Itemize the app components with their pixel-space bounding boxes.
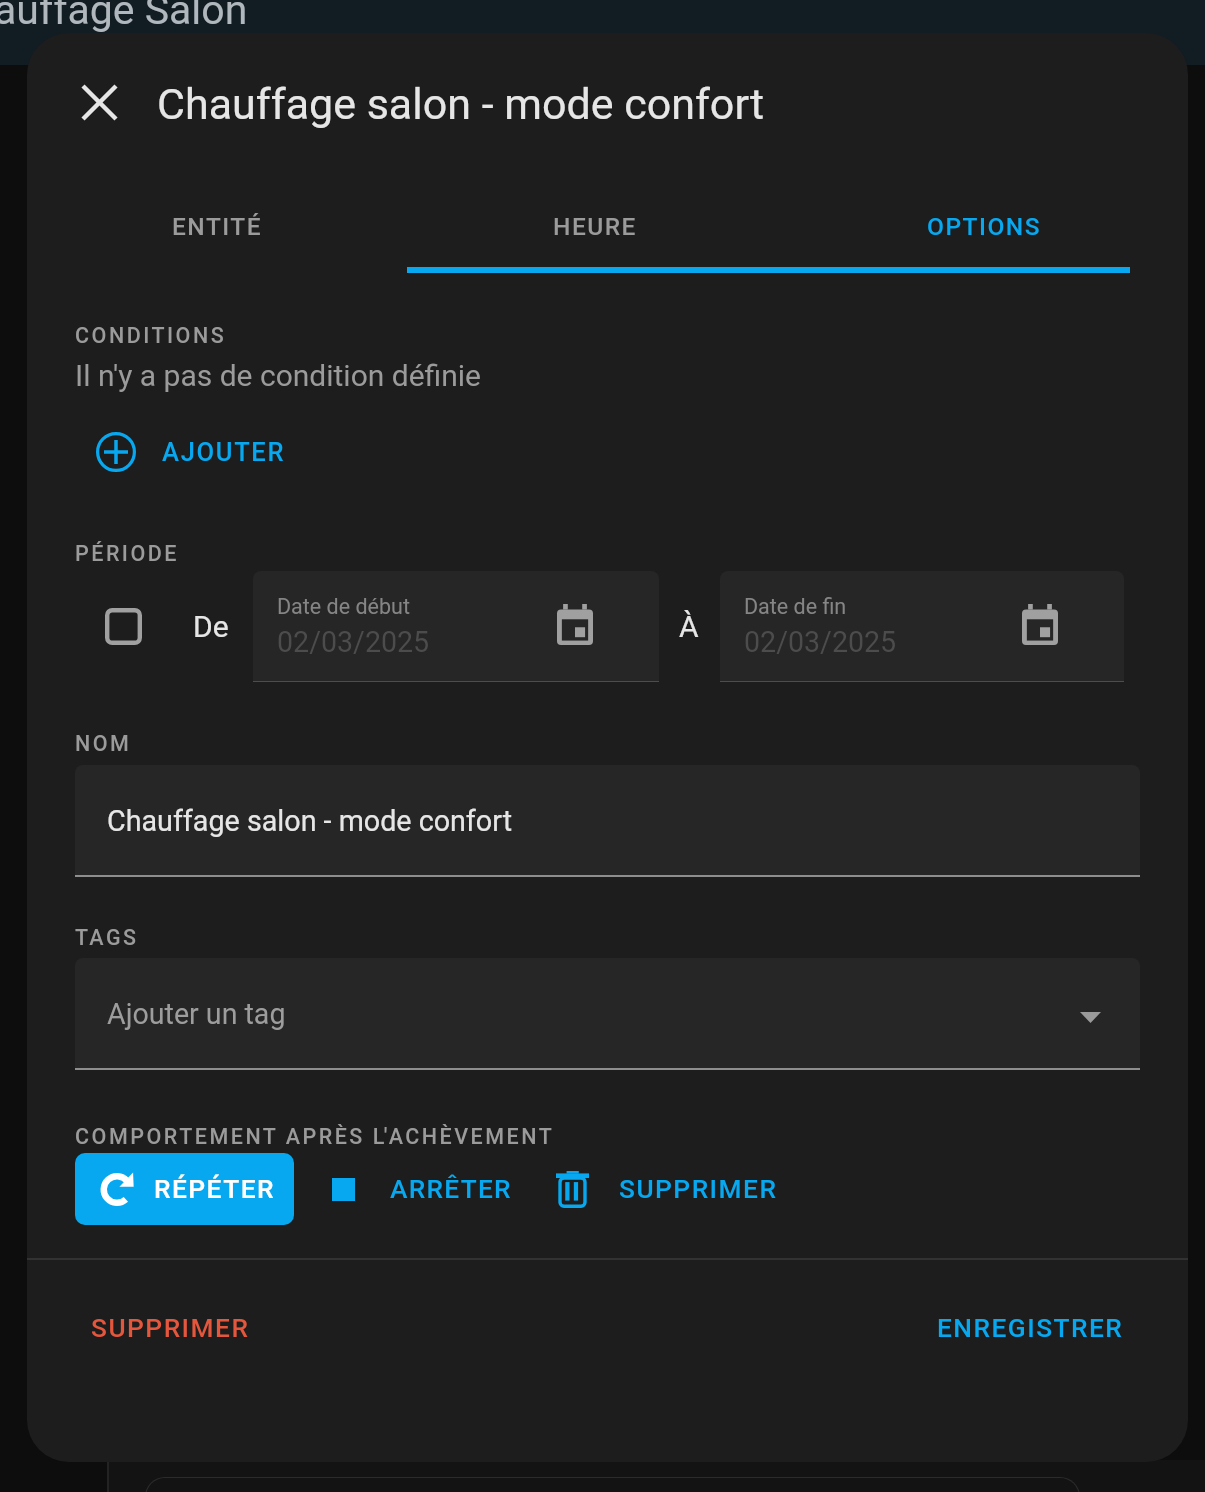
staticText: 02/03/2025 xyxy=(744,625,897,659)
button[interactable]: ENTITÉ xyxy=(37,171,397,273)
staticText: 02/03/2025 xyxy=(277,625,430,659)
staticText: ENREGISTRER xyxy=(937,1313,1124,1344)
button[interactable]: Date de début xyxy=(253,571,659,682)
staticText: COMPORTEMENT APRÈS L'ACHÈVEMENT xyxy=(75,1124,555,1149)
staticText: Ajouter un tag xyxy=(107,997,286,1031)
staticText: Chauffage salon - mode confort xyxy=(107,804,513,838)
staticText: À xyxy=(679,609,699,644)
staticText: Date de fin xyxy=(744,594,847,619)
button[interactable]: ENREGISTRER xyxy=(917,1299,1144,1358)
staticText: AJOUTER xyxy=(162,437,286,467)
staticText: De xyxy=(193,609,229,644)
staticText: RÉPÉTER xyxy=(154,1174,276,1205)
button[interactable]: SUPPRIMER xyxy=(556,1171,778,1208)
button[interactable]: RÉPÉTER xyxy=(75,1153,294,1225)
button[interactable]: Chauffage salon - mode confort xyxy=(75,765,1140,877)
staticText: Il n'y a pas de condition définie xyxy=(75,358,481,393)
button[interactable]: Enable period xyxy=(99,602,147,650)
button[interactable]: Close xyxy=(71,74,127,130)
staticText: NOM xyxy=(75,731,132,756)
button[interactable]: HEURE xyxy=(407,171,783,273)
staticText: OPTIONS xyxy=(927,212,1042,241)
staticText: SUPPRIMER xyxy=(619,1174,778,1205)
staticText: ENTITÉ xyxy=(172,212,263,241)
button[interactable]: ARRÊTER xyxy=(332,1174,512,1205)
button[interactable]: Ajouter un tag xyxy=(75,958,1140,1070)
staticText: Date de début xyxy=(277,594,410,619)
staticText: SUPPRIMER xyxy=(91,1313,250,1344)
staticText: auffage Salon xyxy=(0,0,248,34)
button[interactable]: OPTIONS xyxy=(796,171,1172,273)
button[interactable]: Date de fin xyxy=(720,571,1124,682)
staticText: Chauffage salon - mode confort xyxy=(157,79,765,129)
staticText: ARRÊTER xyxy=(390,1174,512,1205)
button[interactable]: SUPPRIMER xyxy=(71,1299,270,1358)
staticText: CONDITIONS xyxy=(75,323,227,348)
staticText: TAGS xyxy=(75,925,139,950)
staticText: HEURE xyxy=(553,212,637,241)
button[interactable]: AJOUTER xyxy=(75,421,286,483)
staticText: PÉRIODE xyxy=(75,541,179,566)
